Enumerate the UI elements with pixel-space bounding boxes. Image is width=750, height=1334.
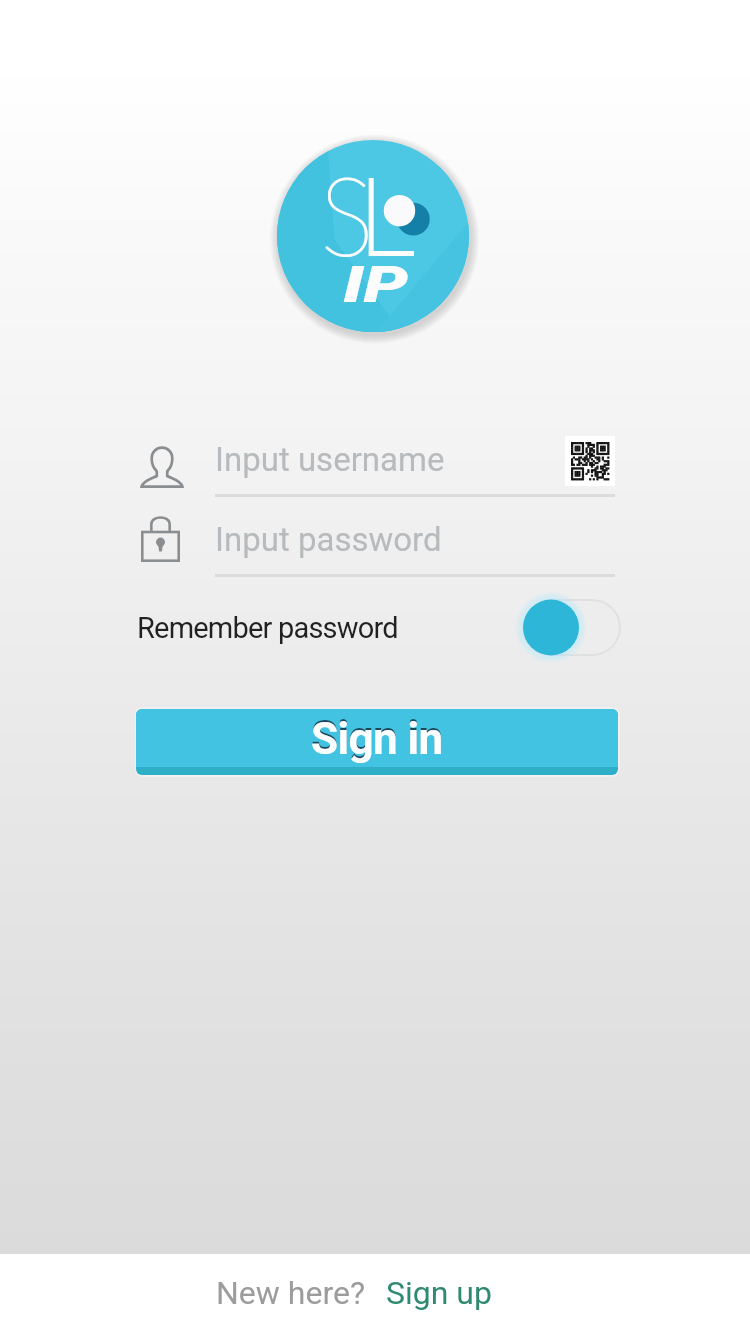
staticText: Sign in [311, 711, 443, 763]
button[interactable]: Sign in [136, 709, 618, 775]
button[interactable]: Remember password [137, 596, 621, 658]
button[interactable]: Scan QR code [565, 436, 615, 486]
staticText: S [320, 150, 375, 286]
staticText: Sign up [386, 1274, 492, 1312]
staticText: Remember password [137, 611, 398, 645]
staticText: Input password [215, 520, 442, 559]
staticText: Sign in [311, 713, 443, 765]
button[interactable]: Sign up [386, 1274, 492, 1312]
staticText: Input username [215, 440, 445, 479]
staticText: IP [343, 256, 408, 313]
staticText: New here? [216, 1274, 366, 1312]
